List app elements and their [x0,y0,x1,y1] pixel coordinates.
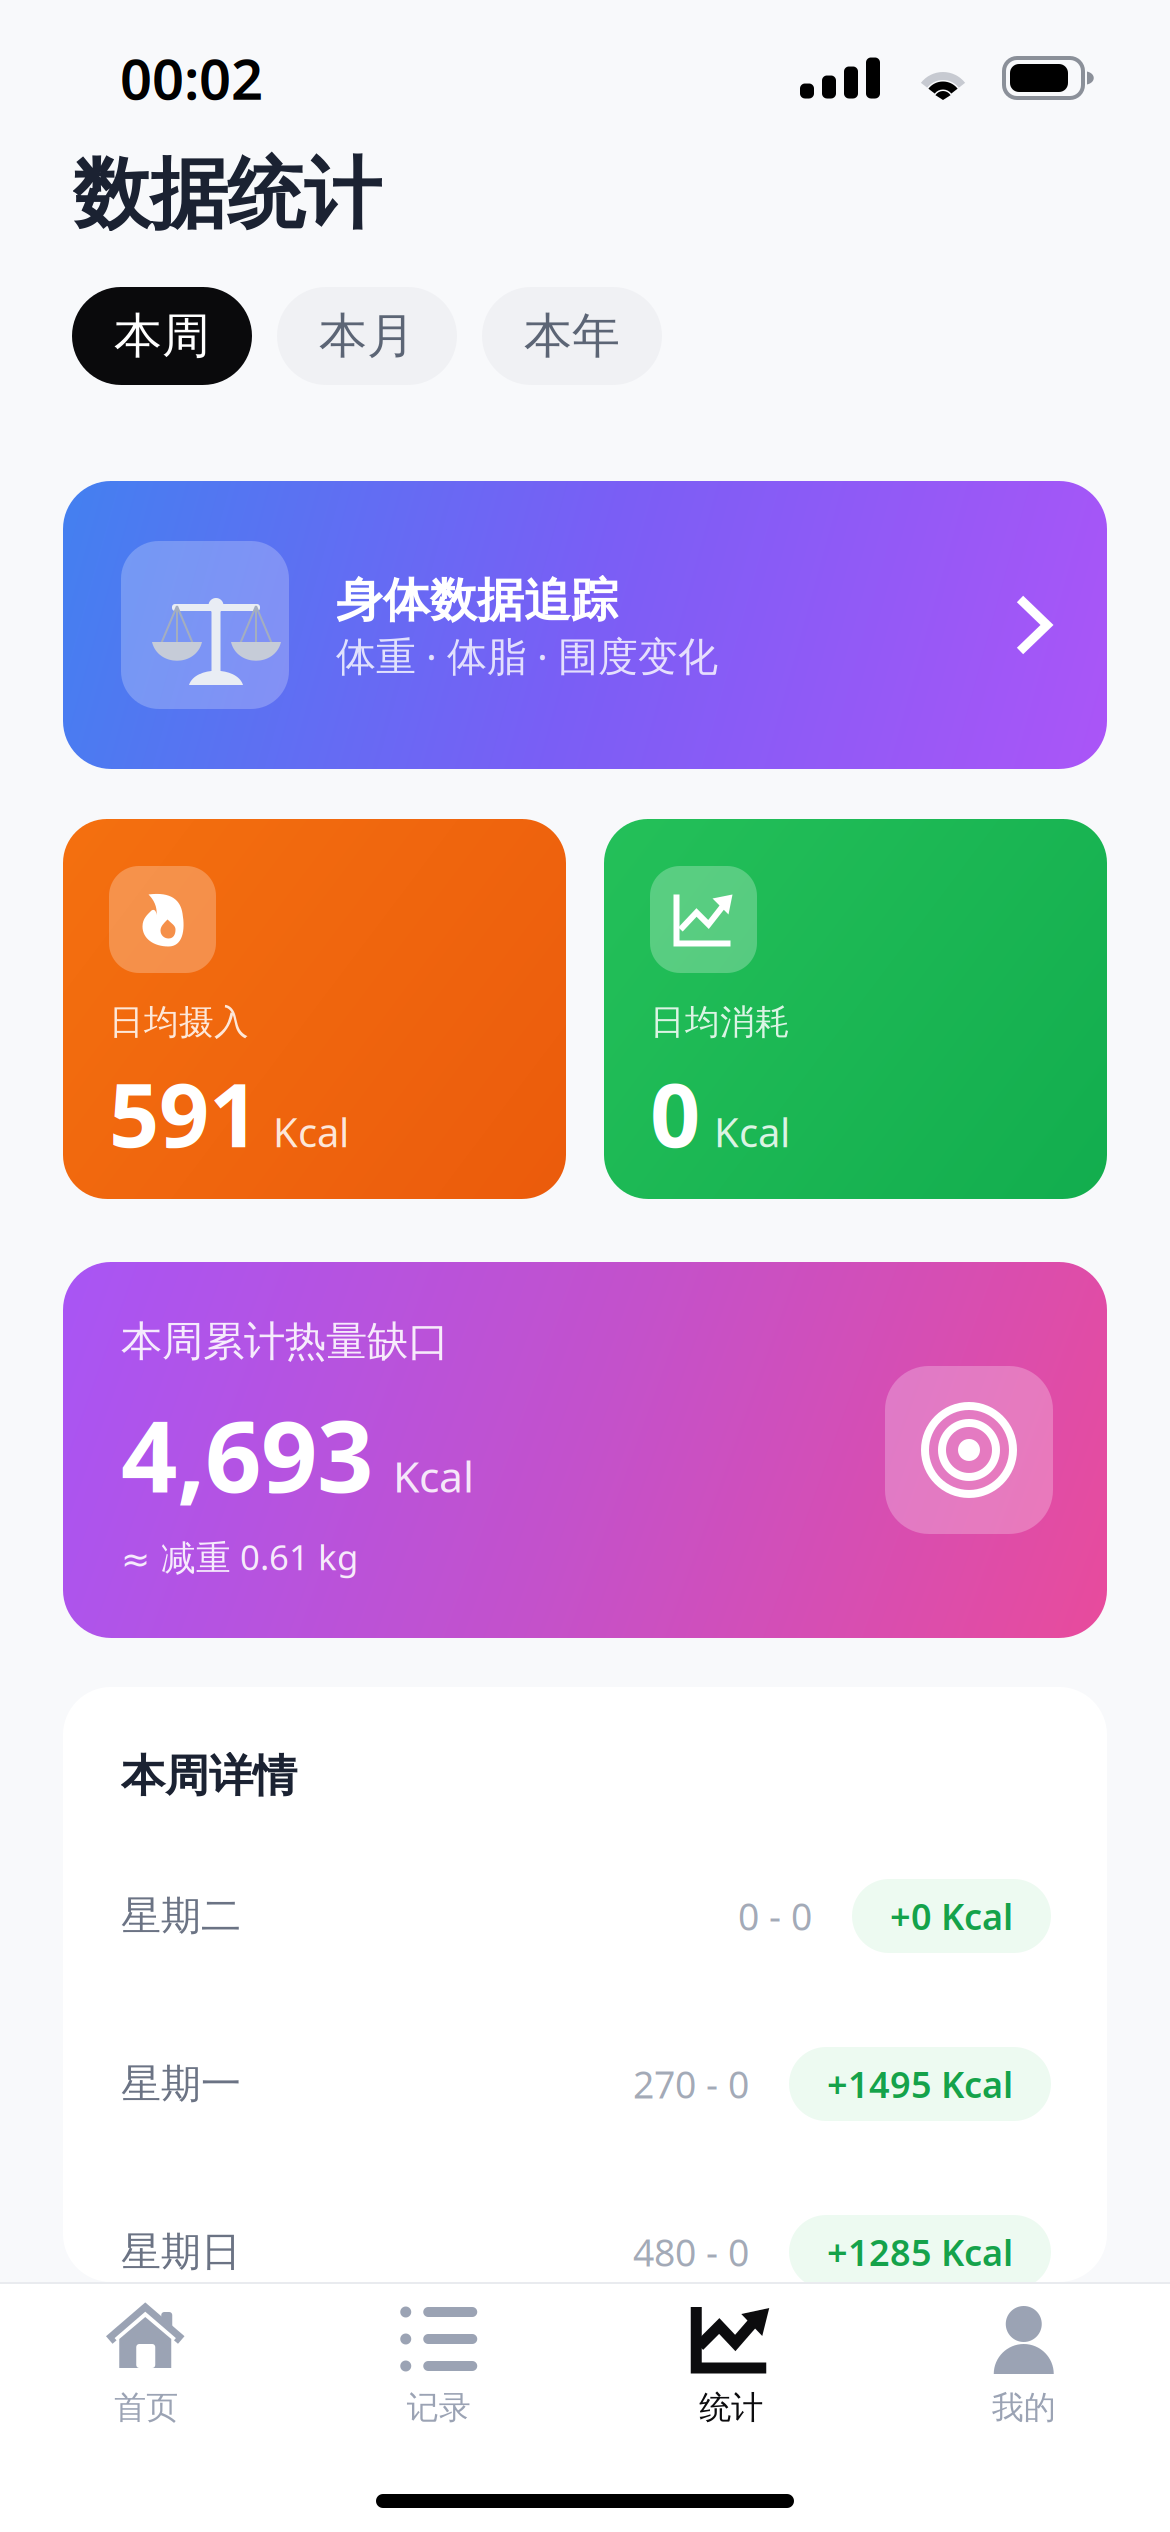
staticText: 4,693 [121,1389,373,1520]
staticText: 270 - 0 [633,2059,749,2109]
staticText: 0 [650,1055,700,1171]
staticText: ≈ 减重 0.61 kg [121,1534,358,1580]
button[interactable]: 统计 [585,2303,877,2427]
staticText: 星期二 [121,1891,241,1940]
staticText: 我的 [992,2388,1056,2427]
staticText: 0 - 0 [738,1891,812,1941]
button[interactable]: 本月 [277,287,457,385]
staticText: 日均消耗 [650,1001,790,1044]
staticText: 本周详情 [121,1749,297,1803]
staticText: 480 - 0 [633,2227,749,2277]
staticText: 591 [109,1055,259,1171]
staticText: Kcal [714,1105,790,1158]
staticText: 本周累计热量缺口 [121,1316,449,1367]
staticText: 00:02 [120,41,263,115]
staticText: 星期一 [121,2059,241,2108]
staticText: 星期日 [121,2227,241,2276]
staticText: 首页 [114,2388,178,2427]
button[interactable]: 首页 [0,2303,292,2427]
staticText: 体重 · 体脂 · 围度变化 [336,629,718,682]
staticText: 本年 [524,306,620,365]
staticText: 本月 [319,306,415,365]
button[interactable]: 我的 [877,2303,1170,2427]
button[interactable]: 记录 [292,2303,585,2427]
staticText: 统计 [699,2388,763,2427]
staticText: 身体数据追踪 [336,572,618,629]
button[interactable]: 本年 [482,287,662,385]
staticText: +1285 Kcal [827,2228,1013,2276]
staticText: 记录 [407,2388,471,2427]
staticText: 数据统计 [73,147,381,242]
staticText: 日均摄入 [109,1001,249,1044]
staticText: Kcal [273,1105,349,1158]
staticText: +1495 Kcal [827,2060,1013,2108]
staticText: +0 Kcal [890,1892,1013,1940]
staticText: Kcal [393,1448,474,1504]
staticText: 本周 [114,306,210,365]
button[interactable]: 本周 [72,287,252,385]
button[interactable]: 身体数据追踪 [63,481,1107,769]
